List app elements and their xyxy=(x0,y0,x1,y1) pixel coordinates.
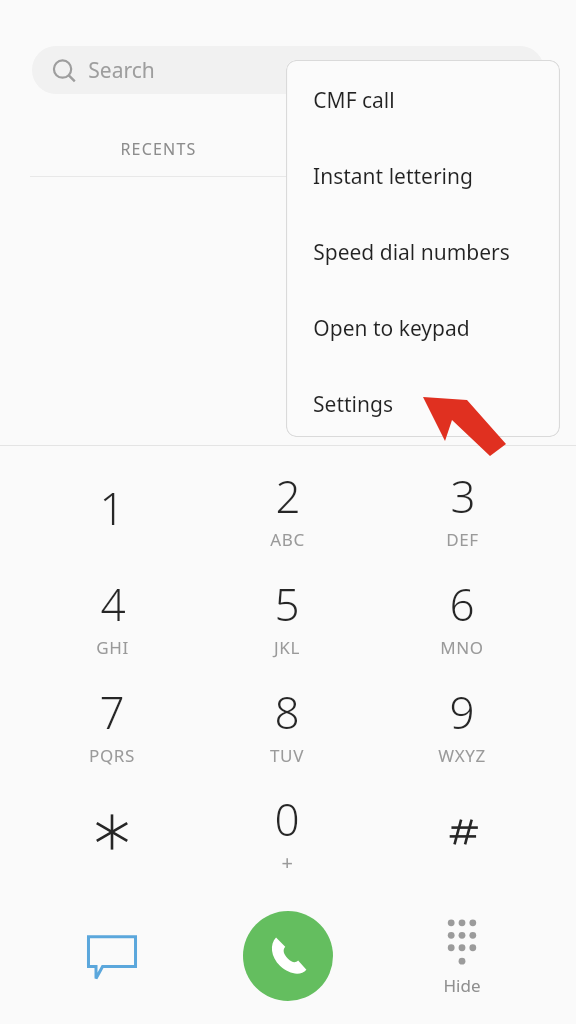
staticText: 4 xyxy=(100,574,126,634)
staticText: JKL xyxy=(274,636,300,659)
button[interactable]: Open to keypad xyxy=(286,290,560,366)
staticText: Instant lettering xyxy=(313,162,473,191)
staticText: ABC xyxy=(270,528,305,551)
staticText: 3 xyxy=(450,466,476,526)
staticText: 7 xyxy=(99,682,125,742)
button[interactable]: 3 xyxy=(380,456,544,560)
button[interactable]: 6 xyxy=(380,564,544,668)
button[interactable]: 2 xyxy=(205,456,369,560)
staticText: + xyxy=(281,849,294,876)
button[interactable]: Call xyxy=(243,911,333,1001)
button[interactable]: Search xyxy=(32,46,544,94)
staticText: RECENTS xyxy=(120,138,197,160)
button[interactable]: 1 xyxy=(30,456,194,560)
staticText: 1 xyxy=(99,478,125,538)
staticText: WXYZ xyxy=(438,744,486,767)
staticText: 0 xyxy=(274,789,300,849)
button[interactable]: CMF call xyxy=(286,62,560,138)
staticText: 2 xyxy=(275,466,301,526)
button[interactable]: Message xyxy=(52,908,172,1004)
button[interactable]: 0 xyxy=(205,780,369,884)
staticText: CMF call xyxy=(313,86,395,115)
staticText: 9 xyxy=(449,682,475,742)
staticText: Search xyxy=(88,56,155,85)
button[interactable]: Speed dial numbers xyxy=(286,214,560,290)
staticText: TUV xyxy=(270,744,304,767)
button[interactable]: 9 xyxy=(380,672,544,776)
staticText: DEF xyxy=(446,528,479,551)
button[interactable]: Instant lettering xyxy=(286,138,560,214)
button[interactable]: 8 xyxy=(205,672,369,776)
button[interactable]: Hide keypad xyxy=(402,908,522,1012)
staticText: PQRS xyxy=(89,744,135,767)
staticText: Open to keypad xyxy=(313,314,470,343)
staticText: MNO xyxy=(440,636,484,659)
staticText: 6 xyxy=(449,574,475,634)
button[interactable]: 4 xyxy=(30,564,194,668)
staticText: 5 xyxy=(274,574,300,634)
button[interactable]: RECENTS xyxy=(30,120,286,177)
button[interactable] xyxy=(380,780,544,884)
staticText: GHI xyxy=(96,636,129,659)
staticText: Speed dial numbers xyxy=(313,238,510,267)
button[interactable]: 7 xyxy=(30,672,194,776)
button[interactable]: 5 xyxy=(205,564,369,668)
button[interactable] xyxy=(30,780,194,884)
button[interactable]: Settings xyxy=(286,366,560,437)
staticText: 8 xyxy=(274,682,300,742)
staticText: Hide xyxy=(443,974,481,997)
staticText: Settings xyxy=(313,390,393,419)
